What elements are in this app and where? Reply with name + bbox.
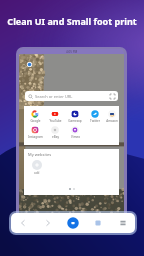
staticText: Search or enter URL <box>35 94 73 99</box>
button[interactable]: Gamezop <box>65 110 85 123</box>
button[interactable]: Home <box>60 213 85 233</box>
button[interactable]: Instagram <box>25 126 45 139</box>
staticText: add <box>34 171 40 175</box>
staticText: Gamezop <box>68 119 82 123</box>
staticText: Google <box>30 119 41 123</box>
staticText: Twitter <box>90 119 100 123</box>
button[interactable]: Google <box>25 110 45 123</box>
button[interactable]: Amazon <box>105 110 118 123</box>
button[interactable]: Twitter <box>85 110 105 123</box>
staticText: Vimeo <box>71 135 80 139</box>
button[interactable]: Tabs <box>85 213 110 233</box>
staticText: My websites <box>28 152 52 157</box>
button[interactable]: Forward <box>35 213 60 233</box>
staticText: YouTube <box>49 119 62 123</box>
staticText: 4:05 PM <box>66 50 78 54</box>
staticText: Amazon <box>106 119 118 123</box>
staticText: Instagram <box>28 135 43 139</box>
button[interactable]: Back <box>11 213 35 233</box>
button[interactable]: Menu <box>110 213 135 233</box>
staticText: Clean UI and Small foot print <box>0 15 144 27</box>
button[interactable]: Search or enter URL <box>25 91 118 101</box>
button[interactable]: Vimeo <box>65 126 85 139</box>
staticText: eBay <box>52 135 59 139</box>
button[interactable]: eBay <box>45 126 65 139</box>
button[interactable]: add <box>29 160 45 175</box>
button[interactable]: YouTube <box>45 110 65 123</box>
